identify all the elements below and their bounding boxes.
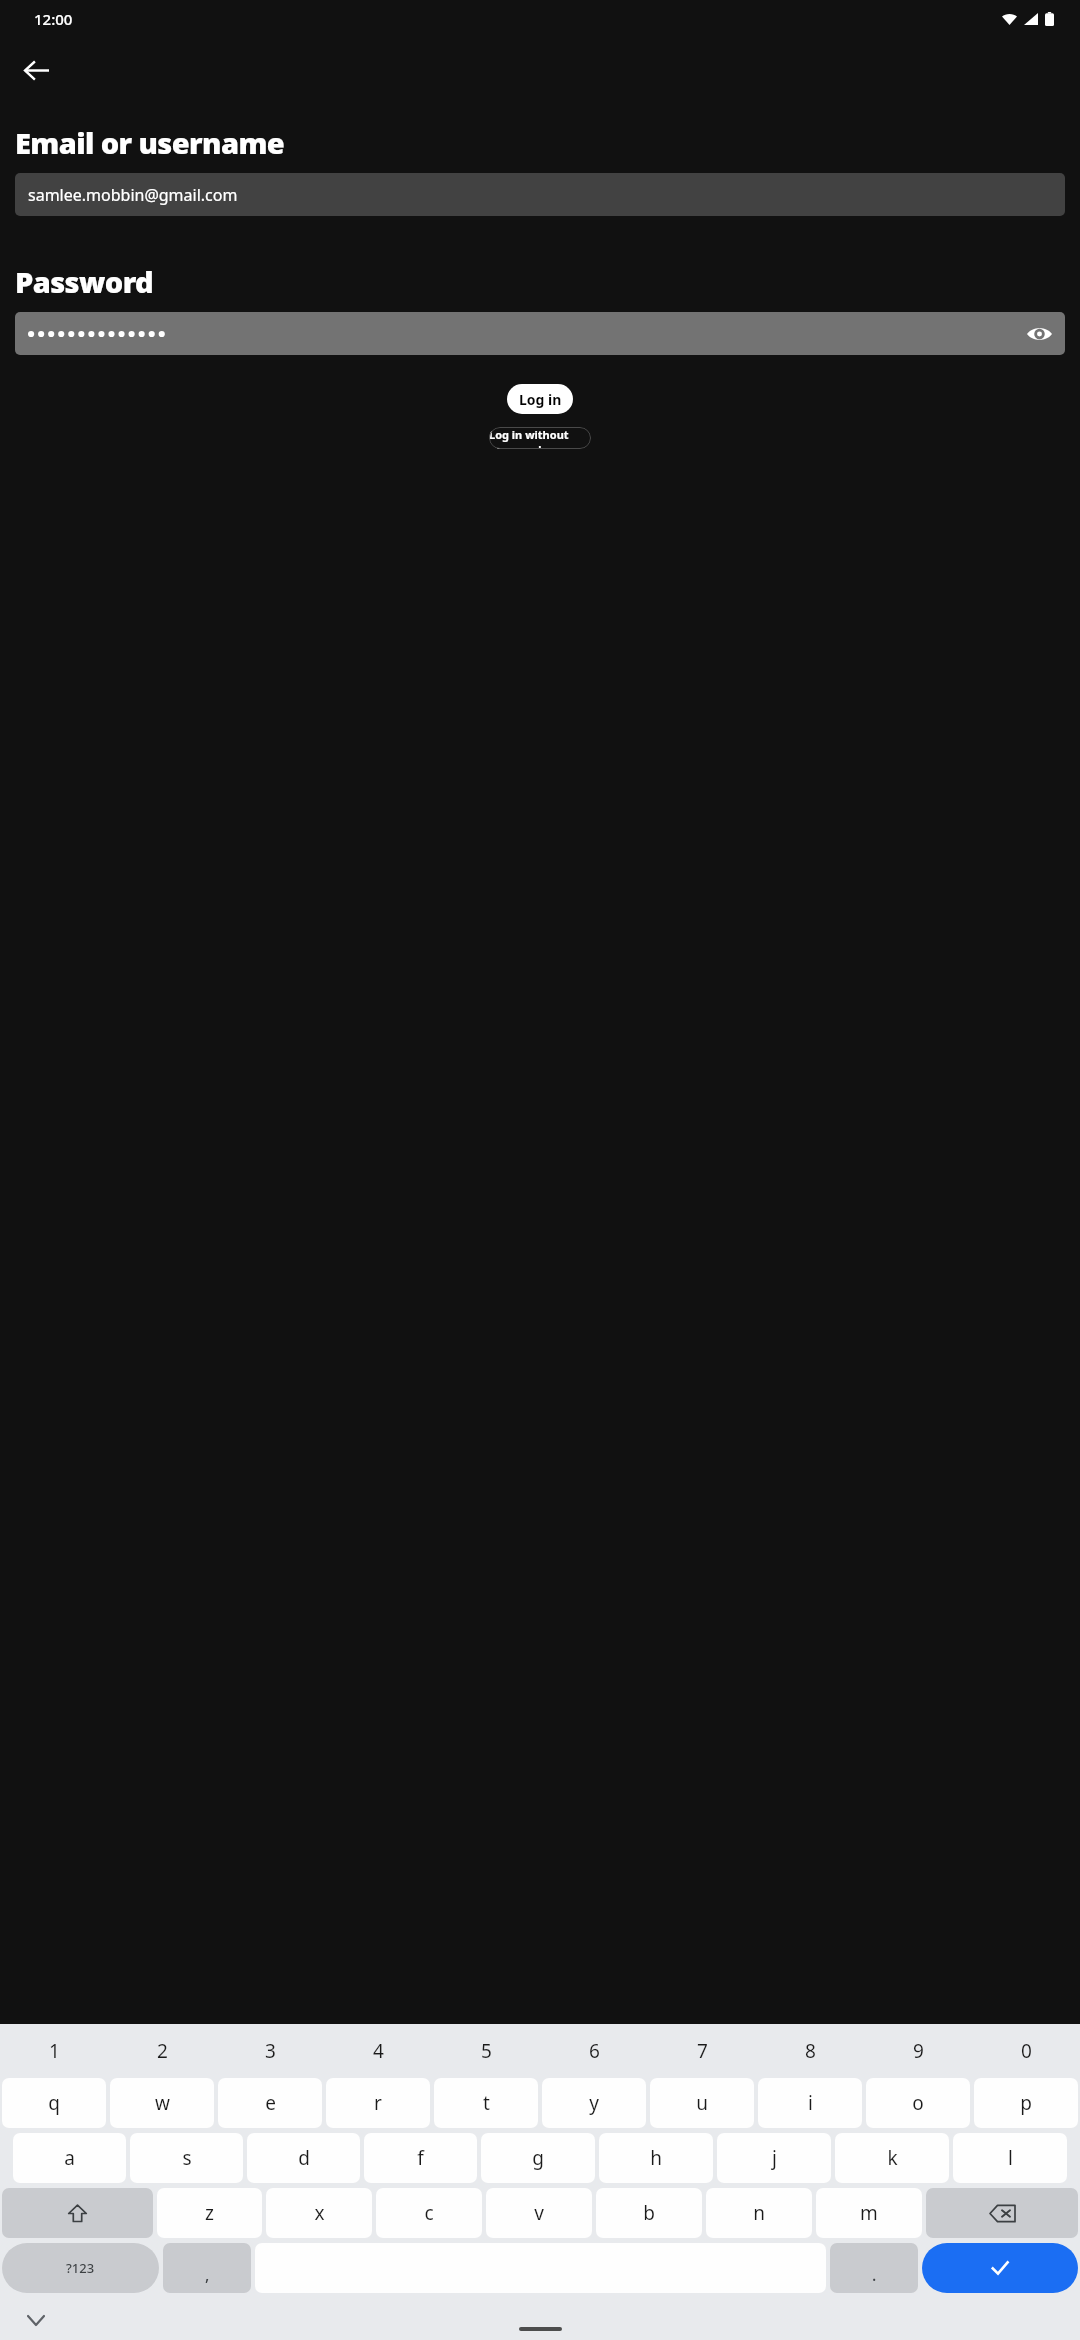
button[interactable]: f <box>364 2133 477 2183</box>
staticText: n <box>753 2200 765 2226</box>
button[interactable]: d <box>247 2133 360 2183</box>
button[interactable]: Hide keyboard <box>16 2301 56 2340</box>
staticText: 2 <box>157 2038 168 2064</box>
staticText: y <box>589 2090 599 2116</box>
button[interactable]: Log in <box>507 384 573 414</box>
staticText: ?123 <box>66 2259 95 2277</box>
staticText: l <box>1008 2145 1013 2171</box>
button[interactable]: . <box>830 2243 918 2293</box>
button[interactable]: 2 <box>108 2024 216 2078</box>
staticText: Log in without password <box>489 427 591 449</box>
staticText: u <box>696 2090 708 2116</box>
button[interactable]: u <box>650 2078 754 2128</box>
staticText: 6 <box>589 2038 600 2064</box>
button[interactable]: v <box>486 2188 592 2238</box>
button[interactable]: c <box>376 2188 482 2238</box>
staticText: Email or username <box>15 123 285 162</box>
staticText: c <box>424 2200 434 2226</box>
staticText: x <box>314 2200 325 2226</box>
button[interactable]: 5 <box>432 2024 540 2078</box>
button[interactable]: ?123 <box>2 2243 159 2293</box>
button[interactable]: samlee.mobbin@gmail.com <box>15 173 1065 216</box>
staticText: t <box>483 2090 490 2116</box>
staticText: samlee.mobbin@gmail.com <box>28 184 238 206</box>
button[interactable]: 1 <box>0 2024 108 2078</box>
staticText: z <box>205 2200 214 2226</box>
button[interactable]: 3 <box>216 2024 324 2078</box>
button[interactable]: Backspace <box>926 2188 1078 2238</box>
staticText: g <box>532 2145 544 2171</box>
staticText: k <box>887 2145 898 2171</box>
staticText: j <box>772 2145 777 2171</box>
staticText: 12:00 <box>34 9 73 29</box>
button[interactable]: h <box>599 2133 713 2183</box>
button[interactable]: q <box>2 2078 106 2128</box>
button[interactable]: n <box>706 2188 812 2238</box>
button[interactable]: m <box>816 2188 922 2238</box>
staticText: o <box>912 2090 924 2116</box>
staticText: 7 <box>697 2038 708 2064</box>
button[interactable]: 9 <box>864 2024 972 2078</box>
button[interactable]: j <box>717 2133 831 2183</box>
button[interactable]: 8 <box>756 2024 864 2078</box>
staticText: q <box>48 2090 60 2116</box>
staticText: 8 <box>805 2038 816 2064</box>
staticText: r <box>374 2090 382 2116</box>
staticText: Log in <box>519 390 562 409</box>
staticText: Password <box>15 262 154 301</box>
staticText: a <box>64 2145 75 2171</box>
staticText: e <box>265 2090 276 2116</box>
staticText: . <box>872 2264 877 2286</box>
staticText: 1 <box>49 2038 60 2064</box>
button[interactable]: 4 <box>324 2024 432 2078</box>
staticText: h <box>650 2145 662 2171</box>
button[interactable]: Done <box>922 2243 1078 2293</box>
staticText: b <box>643 2200 655 2226</box>
button[interactable]: Show password <box>1019 314 1059 354</box>
button[interactable]: Shift <box>2 2188 153 2238</box>
staticText: i <box>808 2090 813 2116</box>
button[interactable]: s <box>130 2133 243 2183</box>
staticText: , <box>205 2264 210 2286</box>
staticText: m <box>860 2200 878 2226</box>
staticText: 5 <box>481 2038 492 2064</box>
button[interactable]: g <box>481 2133 595 2183</box>
button[interactable]: l <box>953 2133 1067 2183</box>
staticText: f <box>417 2145 424 2171</box>
button[interactable]: , <box>163 2243 251 2293</box>
button[interactable]: o <box>866 2078 970 2128</box>
button[interactable]: 7 <box>648 2024 756 2078</box>
button[interactable]: Show password <box>15 312 1065 355</box>
button[interactable]: e <box>218 2078 322 2128</box>
staticText: p <box>1020 2090 1032 2116</box>
button[interactable]: p <box>974 2078 1078 2128</box>
staticText: 3 <box>265 2038 276 2064</box>
staticText: s <box>182 2145 192 2171</box>
button[interactable]: Back <box>8 42 64 98</box>
button[interactable]: 0 <box>972 2024 1080 2078</box>
button[interactable]: b <box>596 2188 702 2238</box>
button[interactable]: w <box>110 2078 214 2128</box>
button[interactable]: Log in without password <box>489 427 591 449</box>
staticText: 4 <box>373 2038 384 2064</box>
button[interactable]: i <box>758 2078 862 2128</box>
button[interactable]: z <box>157 2188 262 2238</box>
staticText: w <box>155 2090 170 2116</box>
button[interactable]: 6 <box>540 2024 648 2078</box>
staticText: v <box>534 2200 544 2226</box>
button[interactable]: r <box>326 2078 430 2128</box>
staticText: d <box>298 2145 310 2171</box>
button[interactable]: x <box>266 2188 372 2238</box>
staticText: 0 <box>1021 2038 1032 2064</box>
button[interactable]: k <box>835 2133 949 2183</box>
button[interactable]: y <box>542 2078 646 2128</box>
staticText: 9 <box>913 2038 924 2064</box>
button[interactable]: a <box>13 2133 126 2183</box>
button[interactable]: t <box>434 2078 538 2128</box>
